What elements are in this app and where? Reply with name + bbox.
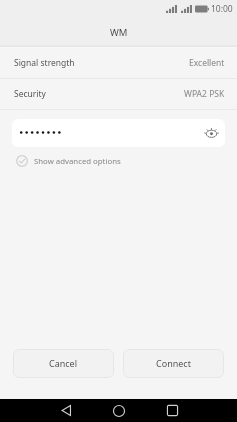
button[interactable]: Show advanced options	[0, 151, 237, 171]
staticText: WPA2 PSK	[184, 88, 225, 100]
button[interactable]: Home	[99, 399, 139, 422]
staticText: Excellent	[189, 57, 225, 69]
button[interactable]: Connect	[123, 349, 224, 378]
button[interactable]: Security	[14, 79, 225, 109]
button[interactable]: Cancel	[13, 349, 114, 378]
button[interactable]: Show password	[197, 119, 225, 147]
staticText: 10:00	[211, 3, 233, 15]
staticText: WM	[110, 26, 128, 39]
staticText: Cancel	[49, 357, 78, 369]
button[interactable]: Back	[46, 399, 86, 422]
staticText: Connect	[156, 357, 191, 369]
staticText: Show advanced options	[34, 156, 121, 167]
staticText: Signal strength	[14, 57, 75, 69]
staticText: Security	[14, 88, 46, 100]
button[interactable]: Show password	[12, 119, 225, 147]
button[interactable]: Recent apps	[152, 399, 192, 422]
button[interactable]: Signal strength	[14, 48, 225, 78]
